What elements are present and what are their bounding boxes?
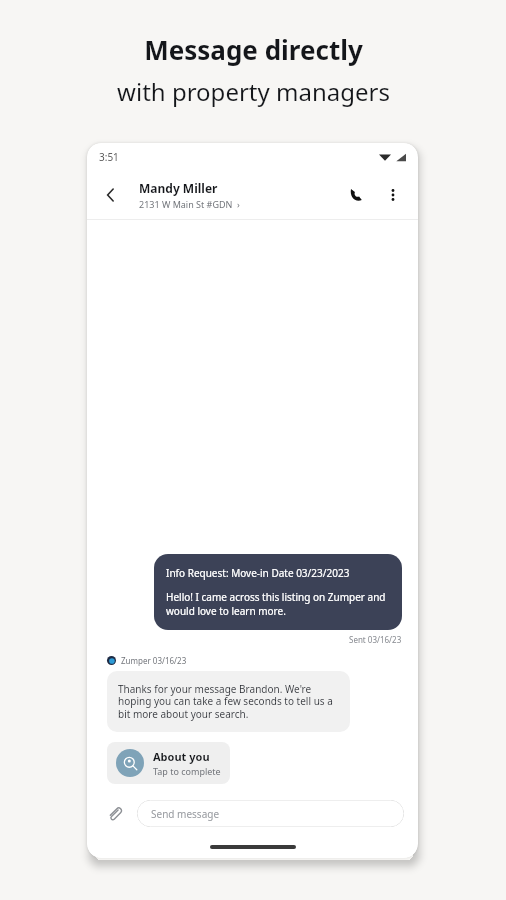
staticText: Zumper 03/16/23 <box>121 655 187 666</box>
staticText: with property managers <box>117 75 390 108</box>
button[interactable]: More options <box>378 180 408 210</box>
staticText: Message directly <box>144 32 363 67</box>
staticText: About you <box>153 749 210 764</box>
button[interactable]: Call <box>340 180 370 210</box>
button[interactable]: Send message <box>137 800 404 827</box>
staticText: Send message <box>151 807 220 821</box>
staticText: Tap to complete <box>153 765 221 777</box>
staticText: Sent 03/16/23 <box>349 634 402 645</box>
button[interactable]: Attach file <box>101 800 127 826</box>
staticText: 2131 W Main St #GDN › <box>139 198 240 210</box>
staticText: 3:51 <box>99 150 119 164</box>
button[interactable]: Info Request: Move-in Date 03/23/2023 <box>154 554 402 630</box>
staticText: Thanks for your message Brandon. We're h… <box>118 682 339 721</box>
button[interactable]: Thanks for your message Brandon. We're h… <box>107 671 350 732</box>
button[interactable]: Mandy Miller <box>139 180 340 210</box>
button[interactable]: About you <box>107 742 230 784</box>
staticText: Mandy Miller <box>139 180 218 196</box>
staticText: Hello! I came across this listing on Zum… <box>166 590 390 618</box>
staticText: Info Request: Move-in Date 03/23/2023 <box>166 566 350 580</box>
button[interactable]: Back <box>97 181 125 209</box>
